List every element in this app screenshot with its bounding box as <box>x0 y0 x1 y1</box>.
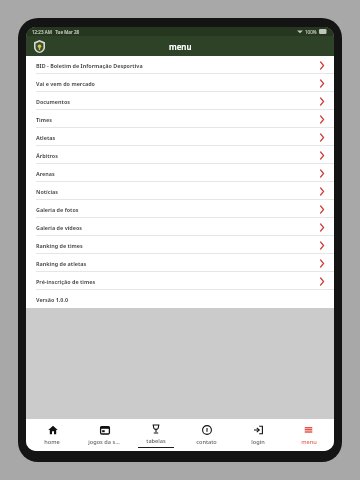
staticText: BID - Boletim de Informação Desportiva <box>36 62 143 69</box>
button[interactable]: Galeria de vídeos <box>26 218 334 236</box>
staticText: Pré-inscrição de times <box>36 278 96 285</box>
other: Jogos da semana <box>100 425 110 435</box>
staticText: contato <box>196 438 217 446</box>
button[interactable]: Versão 1.0.0 <box>26 290 334 308</box>
staticText: 12:23 AM Tue Mar 28 <box>32 29 80 35</box>
other: Home <box>48 425 58 435</box>
button[interactable]: Vai e vem do mercado <box>26 74 334 92</box>
button[interactable]: Documentos <box>26 92 334 110</box>
button[interactable]: Notícias <box>26 182 334 200</box>
staticText: Versão 1.0.0 <box>36 296 69 303</box>
staticText: Times <box>36 116 52 123</box>
staticText: Notícias <box>36 188 59 195</box>
staticText: jogos da s... <box>88 438 120 446</box>
other: Login <box>253 425 263 435</box>
button[interactable]: Logo do clube <box>34 40 45 53</box>
staticText: Galeria de fotos <box>36 206 79 213</box>
staticText: Vai e vem do mercado <box>36 80 95 87</box>
other: Tabelas <box>151 424 161 434</box>
staticText: 100% <box>305 29 317 35</box>
staticText: Arenas <box>36 170 55 177</box>
button[interactable]: Pré-inscrição de times <box>26 272 334 290</box>
button[interactable]: Arenas <box>26 164 334 182</box>
button[interactable]: Tabelas <box>130 419 181 451</box>
staticText: tabelas <box>146 437 166 445</box>
staticText: Galeria de vídeos <box>36 224 83 231</box>
button[interactable]: Ranking de times <box>26 236 334 254</box>
button[interactable]: Galeria de fotos <box>26 200 334 218</box>
button[interactable]: Jogos da semana <box>78 419 130 451</box>
button[interactable]: Login <box>232 419 283 451</box>
button[interactable]: Ranking de atletas <box>26 254 334 272</box>
staticText: login <box>251 438 265 446</box>
button[interactable]: BID - Boletim de Informação Desportiva <box>26 56 334 74</box>
staticText: menu <box>169 41 192 52</box>
staticText: Árbitros <box>36 152 58 159</box>
button[interactable]: Times <box>26 110 334 128</box>
button[interactable]: Árbitros <box>26 146 334 164</box>
staticText: Documentos <box>36 98 70 105</box>
button[interactable]: Contato <box>181 419 232 451</box>
button[interactable]: Menu <box>283 419 334 451</box>
other: Menu <box>304 426 313 434</box>
other: Contato <box>202 425 212 435</box>
staticText: home <box>44 438 60 446</box>
button[interactable]: Atletas <box>26 128 334 146</box>
staticText: menu <box>301 438 317 446</box>
staticText: Atletas <box>36 134 56 141</box>
staticText: Ranking de atletas <box>36 260 87 267</box>
staticText: Ranking de times <box>36 242 83 249</box>
button[interactable]: Home <box>26 419 78 451</box>
